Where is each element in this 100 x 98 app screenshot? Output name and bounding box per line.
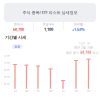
staticText: 기간별 시세	[5, 35, 26, 40]
button[interactable]: 일봉	[12, 44, 22, 49]
staticText: 전일대비	[42, 22, 54, 26]
staticText: 최근 7일 기준	[74, 45, 93, 49]
button[interactable]: 주식 종목/ETF 리스트 상세정보	[4, 3, 96, 22]
staticText: 단위: 원	[79, 41, 90, 45]
staticText: 최고	[93, 51, 99, 54]
staticText: 70,000	[4, 61, 10, 64]
staticText: 주식 종목/ETF 리스트 상세정보	[22, 10, 77, 15]
staticText: 64,000	[4, 82, 10, 85]
staticText: +1.63%	[72, 26, 85, 32]
staticText: 66,000	[4, 75, 10, 78]
staticText: 6/5	[36, 89, 39, 93]
staticText: 68,700	[13, 26, 24, 32]
staticText: 6/3	[13, 89, 16, 93]
staticText: 6/8	[74, 89, 77, 93]
staticText: 6/6	[49, 89, 52, 93]
staticText: 72,000	[4, 54, 10, 57]
staticText: 6/9	[87, 89, 90, 93]
staticText: 일봉	[14, 45, 20, 49]
staticText: 1,100	[44, 26, 53, 32]
staticText: 현재가	[14, 22, 23, 26]
staticText: 등락률	[74, 22, 83, 26]
staticText: 68,700	[80, 51, 91, 55]
staticText: 6/7	[61, 89, 64, 93]
staticText: 6/4	[25, 89, 28, 93]
staticText: 68,000	[4, 68, 10, 71]
staticText: 평균 종가	[66, 51, 79, 54]
